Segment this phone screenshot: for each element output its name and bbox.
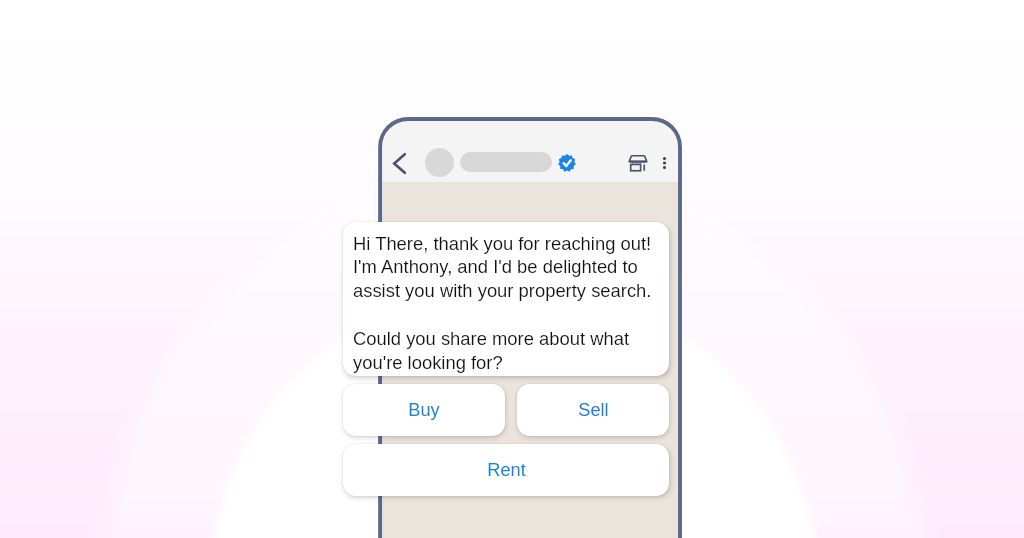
button[interactable]: More options: [650, 149, 678, 177]
staticText: Hi There, thank you for reaching out! I'…: [353, 233, 652, 373]
button[interactable]: Rent: [343, 444, 669, 496]
staticText: Rent: [487, 460, 526, 480]
button[interactable]: Sell: [517, 384, 669, 436]
button[interactable]: Store: [623, 148, 653, 178]
staticText: Buy: [408, 400, 440, 420]
button[interactable]: Buy: [343, 384, 505, 436]
button[interactable]: Back: [385, 149, 414, 178]
staticText: Sell: [578, 400, 609, 420]
